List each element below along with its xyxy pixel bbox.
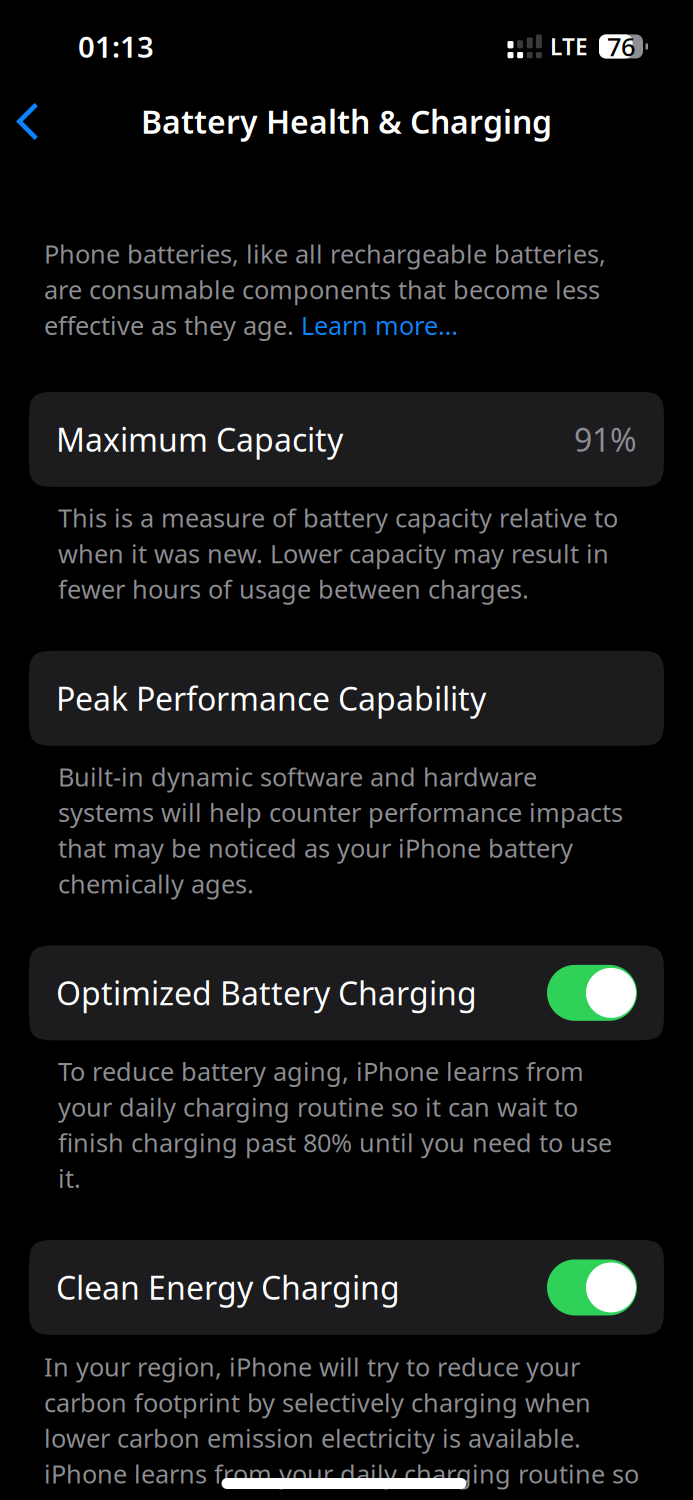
staticText: To reduce battery aging, iPhone learns f… bbox=[58, 1054, 612, 1195]
button[interactable]: Clean Energy Charging bbox=[29, 1240, 664, 1335]
staticText: Built-in dynamic software and hardware s… bbox=[58, 760, 623, 900]
staticText: Maximum Capacity bbox=[56, 418, 343, 461]
button[interactable]: Back bbox=[0, 92, 52, 151]
button[interactable]: Maximum Capacity bbox=[29, 392, 664, 487]
button[interactable]: Peak Performance Capability bbox=[29, 651, 664, 746]
button[interactable]: Optimized Battery Charging bbox=[29, 945, 664, 1040]
staticText: 91% bbox=[574, 418, 637, 461]
staticText: LTE bbox=[550, 31, 588, 61]
staticText: 76 bbox=[607, 30, 635, 63]
staticText: Peak Performance Capability bbox=[56, 677, 486, 720]
staticText: Clean Energy Charging bbox=[56, 1266, 400, 1309]
staticText: Optimized Battery Charging bbox=[56, 972, 477, 1014]
staticText: Phone batteries, like all rechargeable b… bbox=[44, 237, 606, 342]
button[interactable]: Optimized Battery Charging bbox=[547, 965, 637, 1021]
staticText: Battery Health & Charging bbox=[141, 100, 552, 143]
staticText: This is a measure of battery capacity re… bbox=[58, 501, 618, 606]
button[interactable]: Clean Energy Charging bbox=[547, 1259, 637, 1315]
staticText: 01:13 bbox=[78, 27, 154, 66]
staticText: In your region, iPhone will try to reduc… bbox=[44, 1350, 639, 1490]
